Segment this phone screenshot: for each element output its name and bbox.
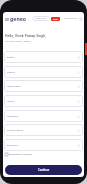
button[interactable]: Mathematics bbox=[4, 80, 83, 92]
button[interactable]: Economics bbox=[4, 139, 83, 151]
button[interactable]: Science bbox=[4, 66, 83, 78]
staticText: Continue bbox=[38, 168, 50, 172]
button[interactable]: Remember my settings bbox=[5, 153, 32, 156]
staticText: You have selected bbox=[5, 40, 24, 43]
button[interactable]: Geography bbox=[4, 110, 83, 122]
button[interactable]: LIVE bbox=[53, 17, 58, 21]
staticText: Latest class bbox=[35, 17, 47, 20]
button[interactable]: Profile bbox=[79, 17, 83, 21]
staticText: geneo bbox=[10, 15, 27, 22]
staticText: More Options bbox=[64, 17, 77, 20]
staticText: Geography bbox=[7, 115, 19, 118]
staticText: History bbox=[7, 100, 15, 103]
button[interactable]: Continue bbox=[5, 165, 82, 175]
button[interactable]: Political Science bbox=[4, 124, 83, 136]
staticText: Class 8 bbox=[24, 40, 31, 43]
staticText: Science bbox=[7, 71, 15, 74]
button[interactable]: Menu bbox=[4, 16, 10, 22]
staticText: Mathematics bbox=[7, 85, 21, 88]
button[interactable]: History bbox=[4, 95, 83, 107]
staticText: Political Science bbox=[7, 129, 24, 132]
staticText: English bbox=[7, 56, 15, 59]
staticText: Economics bbox=[7, 144, 18, 147]
staticText: LIVE bbox=[53, 18, 58, 21]
staticText: Hello, Vivek Pratap Singh, bbox=[5, 33, 47, 37]
button[interactable]: English bbox=[4, 51, 83, 63]
button[interactable]: Latest class bbox=[35, 16, 47, 21]
staticText: Remember my settings bbox=[9, 153, 32, 156]
